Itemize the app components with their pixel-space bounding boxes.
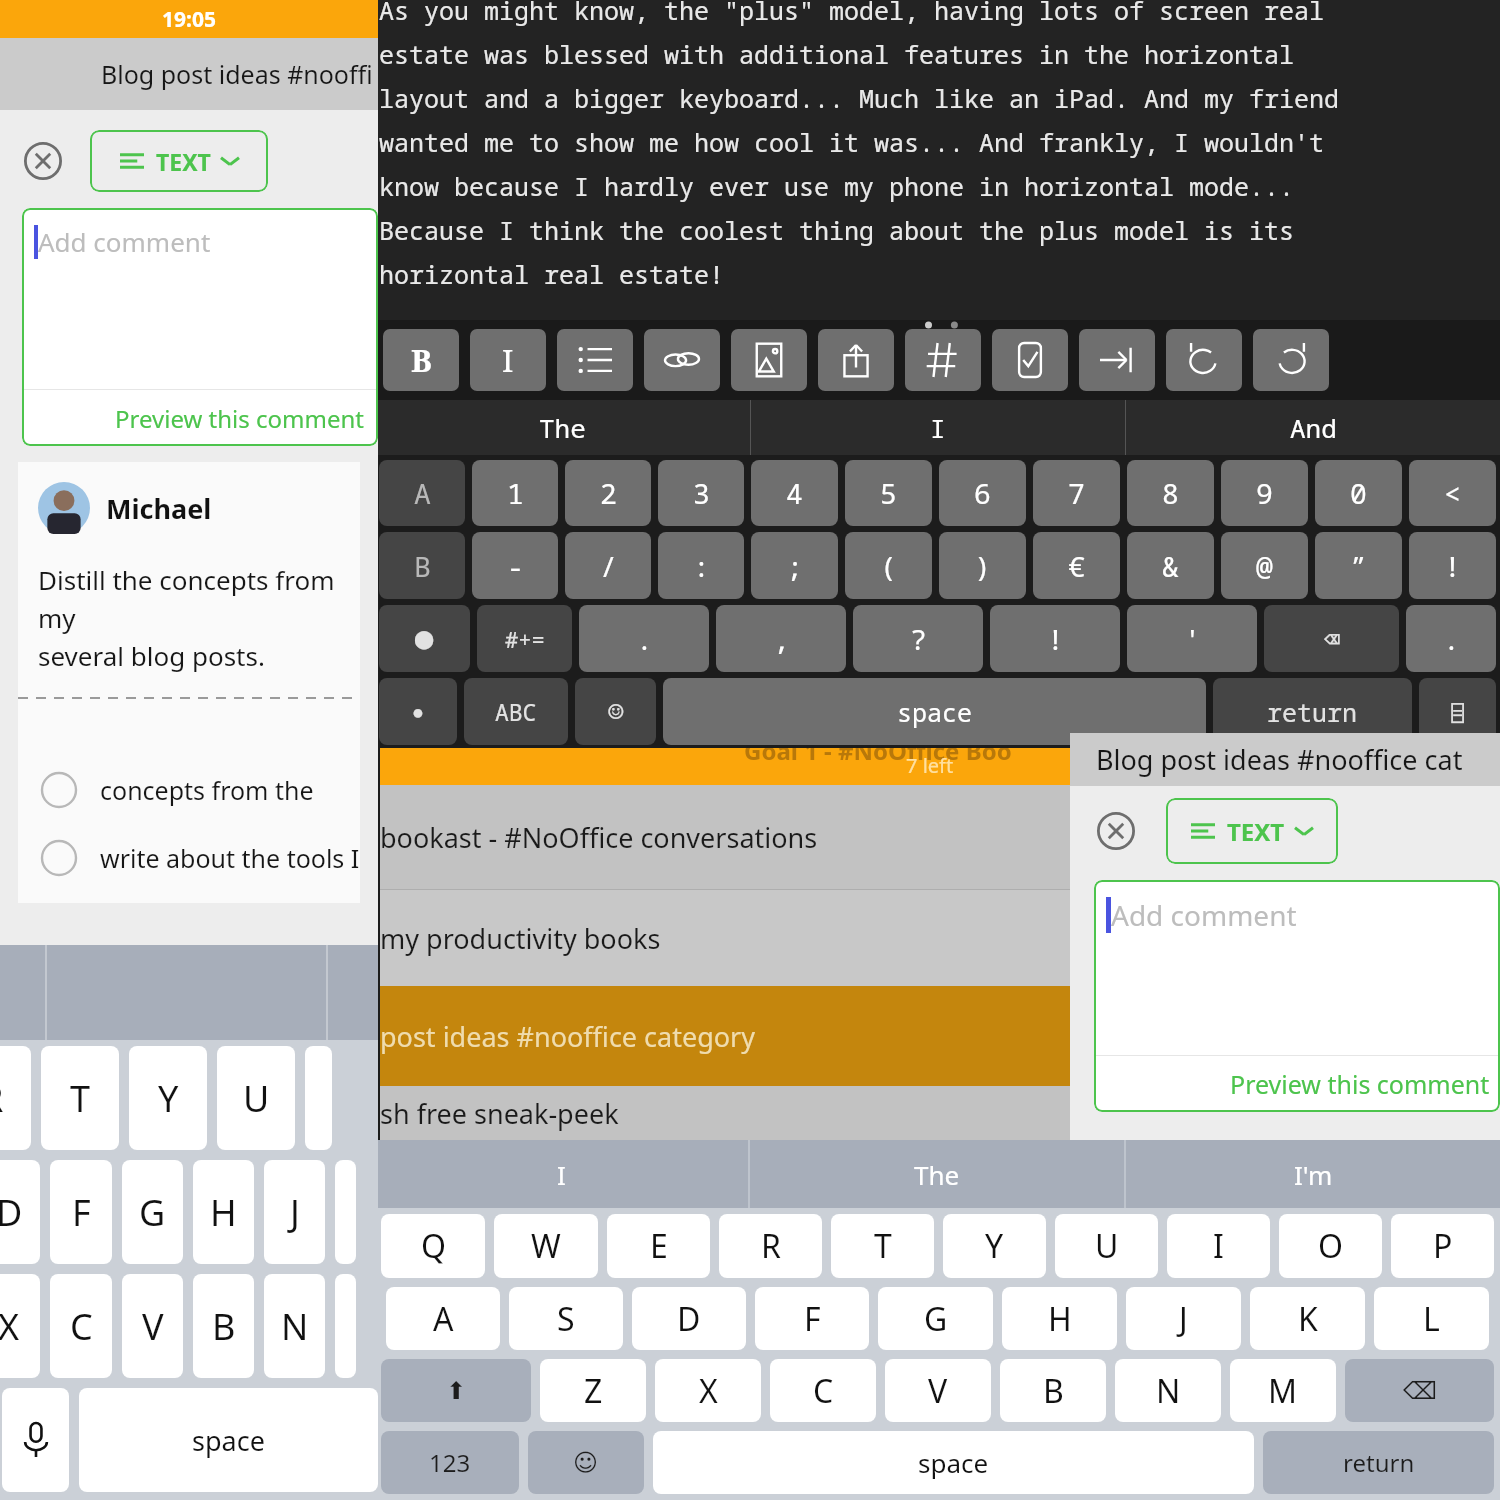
- button[interactable]: @: [1221, 532, 1308, 599]
- button[interactable]: ⌸: [1419, 678, 1496, 745]
- button[interactable]: 0: [1315, 460, 1402, 526]
- button[interactable]: 123: [381, 1431, 519, 1494]
- button[interactable]: The: [375, 400, 750, 455]
- button[interactable]: Add comment: [1094, 880, 1500, 1112]
- button[interactable]: 5: [845, 460, 932, 526]
- button[interactable]: S: [509, 1287, 623, 1350]
- button[interactable]: F: [50, 1160, 112, 1264]
- button[interactable]: Z: [540, 1359, 646, 1422]
- button[interactable]: W: [494, 1214, 598, 1278]
- button[interactable]: G: [122, 1160, 183, 1264]
- button[interactable]: G: [878, 1287, 993, 1350]
- button[interactable]: The: [750, 1140, 1124, 1208]
- button[interactable]: R: [0, 1046, 31, 1150]
- button[interactable]: V: [122, 1274, 183, 1378]
- button[interactable]: &: [1127, 532, 1214, 599]
- button[interactable]: ABC: [464, 678, 568, 745]
- button[interactable]: N: [1115, 1359, 1221, 1422]
- button[interactable]: ⬤: [379, 605, 470, 672]
- button[interactable]: TEXT: [90, 130, 268, 192]
- button[interactable]: H: [1002, 1287, 1117, 1350]
- button[interactable]: H: [193, 1160, 254, 1264]
- button[interactable]: ': [1127, 605, 1257, 672]
- button[interactable]: Undo: [1166, 329, 1242, 391]
- button[interactable]: Indent: [1079, 329, 1155, 391]
- button[interactable]: K: [1250, 1287, 1365, 1350]
- button[interactable]: !: [990, 605, 1120, 672]
- button[interactable]: Share: [818, 329, 894, 391]
- button[interactable]: ): [939, 532, 1026, 599]
- button[interactable]: 4: [751, 460, 838, 526]
- button[interactable]: L: [1374, 1287, 1489, 1350]
- button[interactable]: 8: [1127, 460, 1214, 526]
- button[interactable]: space: [653, 1431, 1254, 1494]
- button[interactable]: #+=: [477, 605, 572, 672]
- button[interactable]: I: [1167, 1214, 1270, 1278]
- button[interactable]: return: [1213, 678, 1412, 745]
- button[interactable]: Close: [1092, 807, 1140, 855]
- button[interactable]: T: [41, 1046, 119, 1150]
- button[interactable]: return: [1263, 1431, 1494, 1494]
- button[interactable]: ;: [751, 532, 838, 599]
- button[interactable]: Preview this comment: [115, 402, 364, 435]
- button[interactable]: 7: [1033, 460, 1120, 526]
- button[interactable]: 3: [658, 460, 744, 526]
- button[interactable]: B: [1000, 1359, 1106, 1422]
- button[interactable]: Add comment: [22, 208, 378, 446]
- button[interactable]: Q: [381, 1214, 485, 1278]
- button[interactable]: Bulleted list: [557, 329, 633, 391]
- button[interactable]: Redo: [1253, 329, 1329, 391]
- button[interactable]: A: [386, 1287, 500, 1350]
- button[interactable]: ⬆: [381, 1359, 531, 1422]
- button[interactable]: ⌫: [1264, 605, 1399, 672]
- button[interactable]: Y: [129, 1046, 207, 1150]
- button[interactable]: M: [1230, 1359, 1336, 1422]
- button[interactable]: <: [1409, 460, 1496, 526]
- button[interactable]: /: [565, 532, 651, 599]
- button[interactable]: Bold: [383, 329, 459, 391]
- button[interactable]: O: [1279, 1214, 1382, 1278]
- button[interactable]: J: [264, 1160, 325, 1264]
- button[interactable]: Dictate: [2, 1388, 69, 1492]
- button[interactable]: bookast - #NoOffice conversations: [380, 785, 1070, 889]
- button[interactable]: D: [632, 1287, 746, 1350]
- button[interactable]: V: [885, 1359, 991, 1422]
- button[interactable]: Michael: [18, 462, 360, 903]
- button[interactable]: N: [264, 1274, 325, 1378]
- button[interactable]: U: [217, 1046, 295, 1150]
- button[interactable]: post ideas #nooffice category: [380, 986, 1070, 1086]
- button[interactable]: TEXT: [1166, 798, 1338, 864]
- button[interactable]: sh free sneak-peek: [380, 1086, 1070, 1140]
- button[interactable]: R: [719, 1214, 822, 1278]
- button[interactable]: :: [658, 532, 744, 599]
- button[interactable]: ⌫: [1345, 1359, 1494, 1422]
- button[interactable]: .: [579, 605, 709, 672]
- button[interactable]: And: [1126, 400, 1500, 455]
- button[interactable]: Close: [20, 138, 66, 184]
- button[interactable]: X: [0, 1274, 40, 1378]
- button[interactable]: P: [1391, 1214, 1494, 1278]
- button[interactable]: 6: [939, 460, 1026, 526]
- button[interactable]: my productivity books: [380, 890, 1070, 986]
- button[interactable]: !: [1409, 532, 1496, 599]
- button[interactable]: U: [1055, 1214, 1158, 1278]
- button[interactable]: Y: [943, 1214, 1046, 1278]
- button[interactable]: (: [845, 532, 932, 599]
- button[interactable]: B: [193, 1274, 254, 1378]
- button[interactable]: F: [755, 1287, 869, 1350]
- button[interactable]: 2: [565, 460, 651, 526]
- button[interactable]: Checklist: [992, 329, 1068, 391]
- button[interactable]: Link: [644, 329, 720, 391]
- button[interactable]: Insert image: [731, 329, 807, 391]
- button[interactable]: I: [751, 400, 1125, 455]
- button[interactable]: .: [1406, 605, 1496, 672]
- button[interactable]: B: [379, 532, 465, 599]
- button[interactable]: concepts from the bookast - #NoOffice: [40, 771, 360, 809]
- button[interactable]: space: [79, 1388, 378, 1492]
- button[interactable]: ,: [716, 605, 846, 672]
- button[interactable]: C: [50, 1274, 112, 1378]
- button[interactable]: T: [831, 1214, 934, 1278]
